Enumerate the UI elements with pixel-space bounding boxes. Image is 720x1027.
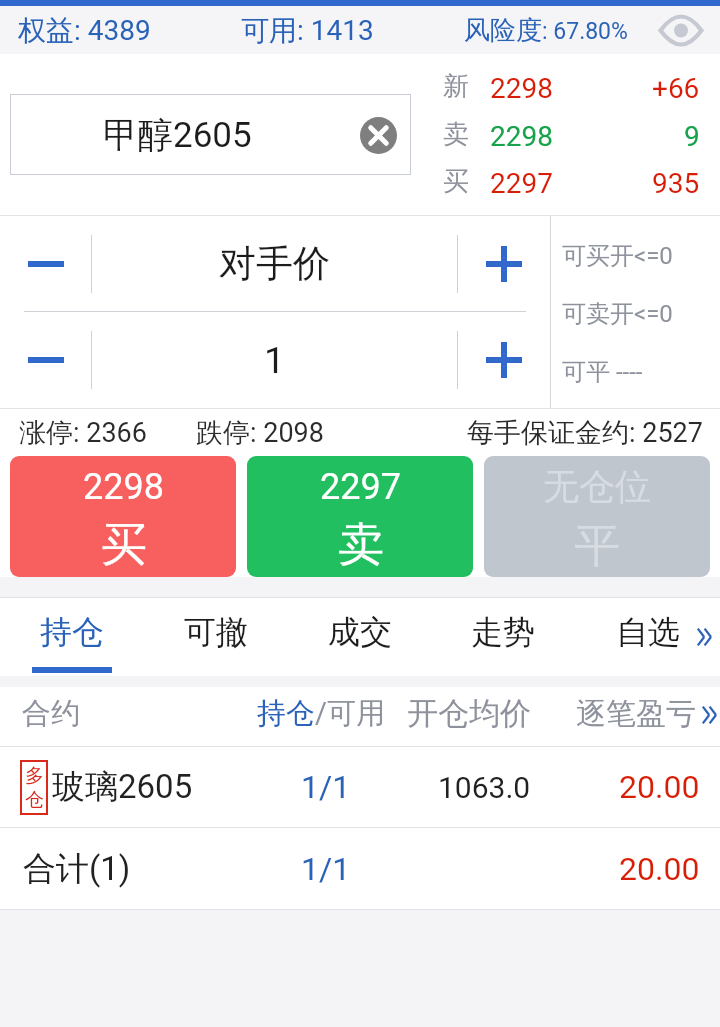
staticText: 跌停: 2098 [196, 416, 324, 450]
staticText: 20.00 [619, 850, 700, 888]
staticText: 自选 [616, 612, 680, 652]
staticText: 卖 [443, 118, 469, 151]
staticText: 可撤 [184, 612, 248, 652]
staticText: 卖 [338, 516, 384, 574]
staticText: 2298 [490, 120, 553, 153]
staticText: 合计(1) [23, 848, 131, 890]
button[interactable]: 无仓位 [484, 456, 710, 577]
button[interactable]: More tabs [690, 598, 720, 676]
button[interactable]: 持仓 [8, 598, 136, 676]
staticText: 多 [25, 764, 44, 788]
staticText: 935 [652, 167, 700, 200]
staticText: 20.00 [619, 768, 700, 806]
staticText: 可买开<=0 [562, 241, 673, 271]
staticText: 仓 [25, 788, 44, 812]
staticText: 风险度 [464, 14, 542, 47]
staticText: 买 [101, 516, 147, 574]
staticText: 玻璃2605 [52, 766, 193, 808]
button[interactable]: 甲醇2605 [10, 94, 411, 175]
button[interactable]: 自选 [584, 598, 712, 676]
staticText: 可卖开<=0 [562, 299, 673, 329]
staticText: /可用 [315, 695, 385, 732]
button[interactable]: Increase [486, 312, 522, 408]
button[interactable]: 2298 [10, 456, 236, 577]
staticText: +66 [652, 72, 700, 105]
staticText: 成交 [328, 612, 392, 652]
button[interactable]: Toggle balance visibility [654, 6, 708, 54]
staticText: 持仓 [40, 612, 104, 652]
staticText: 每手保证金约: 2527 [467, 416, 703, 450]
staticText: 可平 ---- [562, 357, 643, 387]
button[interactable]: 2297 [247, 456, 473, 577]
button[interactable]: 成交 [296, 598, 424, 676]
staticText: 权益: 4389 [18, 13, 151, 48]
staticText: 持仓 [257, 695, 315, 732]
button[interactable]: 多 [0, 747, 720, 827]
button[interactable]: More columns [700, 687, 720, 742]
staticText: 1 [264, 339, 285, 382]
staticText: 合约 [22, 695, 80, 732]
button[interactable]: Clear contract [359, 116, 397, 154]
staticText: 1/1 [301, 768, 351, 806]
staticText: 2298 [490, 72, 553, 105]
button[interactable]: Increase [486, 216, 522, 311]
button[interactable]: Decrease [0, 312, 91, 408]
staticText: 开仓均价 [407, 694, 531, 733]
staticText: 甲醇2605 [103, 113, 252, 157]
staticText: : 67.80% [542, 18, 628, 45]
staticText: 1/1 [301, 850, 351, 888]
staticText: 9 [684, 120, 700, 153]
staticText: 对手价 [219, 240, 330, 287]
staticText: 2298 [83, 466, 164, 508]
staticText: 2297 [490, 167, 553, 200]
staticText: 可用: 1413 [241, 13, 374, 48]
button[interactable]: 可撤 [152, 598, 280, 676]
button[interactable]: 走势 [439, 598, 567, 676]
staticText: 平 [574, 517, 620, 575]
staticText: 无仓位 [543, 464, 651, 509]
staticText: 涨停: 2366 [19, 416, 147, 450]
staticText: 1063.0 [438, 770, 531, 805]
button[interactable]: Decrease [0, 216, 91, 311]
staticText: 走势 [471, 612, 535, 652]
staticText: 逐笔盈亏 [576, 695, 696, 733]
staticText: 买 [443, 165, 469, 198]
staticText: 2297 [320, 466, 401, 508]
staticText: 新 [443, 70, 469, 103]
